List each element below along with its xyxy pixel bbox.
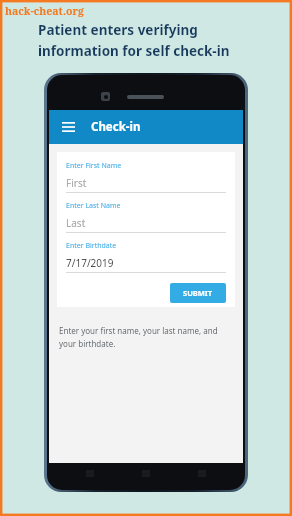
staticText: First: [66, 176, 87, 190]
button[interactable]: Open navigation menu: [49, 110, 243, 144]
button[interactable]: Enter Last Name: [66, 201, 226, 233]
staticText: Enter First Name: [66, 161, 122, 171]
staticText: Check-in: [91, 119, 141, 135]
button[interactable]: Enter Birthdate: [66, 241, 226, 273]
staticText: hack-cheat.org: [5, 4, 84, 18]
staticText: Last: [66, 216, 86, 230]
staticText: Enter Birthdate: [66, 241, 117, 251]
staticText: SUBMIT: [183, 288, 213, 298]
staticText: your birthdate.: [59, 338, 116, 349]
staticText: Patient enters verifying: [38, 21, 198, 39]
staticText: information for self check-in: [38, 42, 230, 60]
staticText: 7/17/2019: [66, 256, 114, 270]
button[interactable]: Enter First Name: [66, 161, 226, 193]
button[interactable]: Open navigation menu: [58, 117, 78, 137]
staticText: Enter your first name, your last name, a…: [59, 325, 218, 336]
button[interactable]: SUBMIT: [170, 283, 226, 303]
staticText: Enter Last Name: [66, 201, 121, 211]
